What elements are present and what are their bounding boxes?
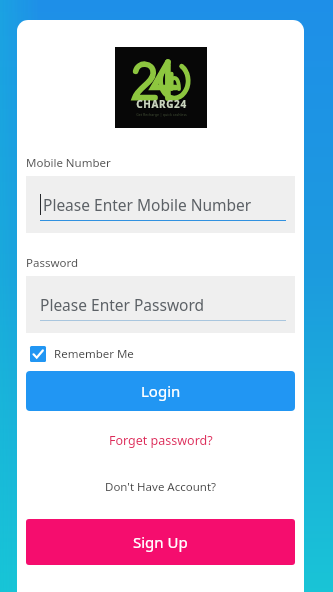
button[interactable]: Please Enter Mobile Number (26, 176, 295, 233)
staticText: Mobile Number (26, 155, 111, 171)
button[interactable]: Forget password? (105, 428, 217, 453)
button[interactable]: Please Enter Password (26, 276, 295, 333)
staticText: Forget password? (109, 432, 213, 449)
staticText: Login (141, 381, 181, 401)
staticText: Remember Me (54, 346, 134, 362)
button[interactable]: Login (26, 371, 295, 411)
staticText: Password (26, 255, 79, 271)
staticText: Don't Have Account? (105, 479, 217, 495)
button[interactable]: Sign Up (26, 519, 295, 565)
staticText: CHARG24 (136, 97, 187, 111)
button[interactable]: Remember Me (30, 346, 134, 362)
staticText: Please Enter Mobile Number (43, 194, 252, 215)
staticText: Get Recharge | quick cashless (136, 112, 187, 117)
staticText: Sign Up (133, 532, 188, 552)
staticText: Please Enter Password (40, 294, 205, 315)
